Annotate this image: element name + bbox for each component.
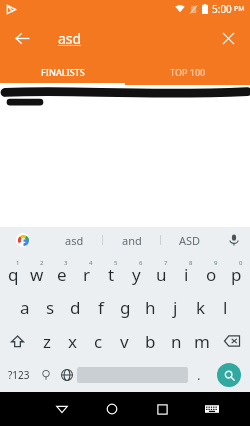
button[interactable]: ?123 — [2, 358, 35, 392]
button[interactable]: l — [213, 290, 238, 324]
button[interactable]: Change keyboard language — [56, 358, 77, 392]
staticText: l — [223, 296, 228, 319]
staticText: 5 — [114, 259, 118, 267]
button[interactable]: asd — [58, 29, 82, 48]
staticText: and — [122, 233, 142, 248]
button[interactable]: j — [163, 290, 188, 324]
button[interactable]: 1 — [1, 256, 25, 290]
button[interactable]: 5 — [99, 256, 124, 290]
button[interactable]: a — [12, 290, 38, 324]
staticText: 8 — [189, 259, 193, 267]
staticText: h — [145, 296, 156, 319]
staticText: c — [94, 330, 103, 353]
button[interactable]: Switch keyboard — [187, 392, 237, 426]
staticText: 2 — [40, 259, 44, 267]
button[interactable]: 8 — [174, 256, 199, 290]
button[interactable]: Google — [0, 227, 46, 253]
staticText: 1 — [16, 259, 20, 267]
button[interactable]: FINALISTS — [0, 58, 125, 85]
staticText: s — [46, 296, 55, 319]
button[interactable]: c — [85, 324, 111, 358]
button[interactable]: Back — [8, 24, 36, 52]
button[interactable]: v — [111, 324, 137, 358]
button[interactable]: h — [138, 290, 163, 324]
staticText: 7 — [164, 259, 168, 267]
button[interactable]: s — [38, 290, 63, 324]
button[interactable]: Backspace — [215, 324, 249, 358]
button[interactable]: x — [59, 324, 85, 358]
button[interactable]: TOP 100 — [125, 58, 250, 85]
staticText: 4 — [89, 259, 93, 267]
button[interactable]: 3 — [49, 256, 74, 290]
staticText: 3 — [64, 259, 68, 267]
button[interactable]: 9 — [199, 256, 224, 290]
button[interactable]: 4 — [74, 256, 99, 290]
button[interactable]: . — [188, 358, 209, 392]
staticText: v — [120, 330, 129, 353]
staticText: j — [173, 296, 178, 319]
staticText: p — [231, 263, 242, 286]
button[interactable]: m — [189, 324, 215, 358]
staticText: PM — [234, 4, 245, 14]
staticText: FINALISTS — [41, 66, 85, 78]
button[interactable]: Home — [87, 392, 137, 426]
button[interactable]: 6 — [124, 256, 149, 290]
button[interactable]: n — [163, 324, 189, 358]
staticText: a — [20, 296, 30, 319]
staticText: e — [57, 263, 67, 286]
staticText: . — [197, 366, 201, 384]
staticText: r — [83, 263, 91, 286]
button[interactable]: Recent apps — [137, 392, 187, 426]
button[interactable]: Emoji — [35, 358, 56, 392]
button[interactable]: g — [113, 290, 138, 324]
button[interactable]: z — [34, 324, 59, 358]
button[interactable]: 7 — [149, 256, 174, 290]
button[interactable]: Voice input — [218, 227, 250, 253]
staticText: TOP 100 — [170, 66, 206, 78]
button[interactable]: 2 — [25, 256, 49, 290]
staticText: q — [8, 263, 19, 286]
button[interactable]: k — [188, 290, 213, 324]
staticText: d — [70, 296, 81, 319]
button[interactable]: b — [137, 324, 163, 358]
staticText: 6 — [139, 259, 143, 267]
button[interactable]: ASD — [161, 227, 218, 253]
button[interactable]: 0 — [224, 256, 249, 290]
staticText: ?123 — [8, 368, 30, 382]
button[interactable]: Shift — [1, 324, 34, 358]
staticText: z — [43, 330, 51, 353]
button[interactable]: asd — [46, 227, 102, 253]
staticText: t — [108, 263, 115, 286]
staticText: 5:00 — [212, 2, 232, 16]
button[interactable]: f — [88, 290, 113, 324]
staticText: x — [68, 330, 77, 353]
button[interactable]: Clear search — [214, 24, 242, 52]
staticText: b — [145, 330, 156, 353]
staticText: n — [171, 330, 182, 353]
staticText: 9 — [214, 259, 218, 267]
staticText: 0 — [239, 259, 243, 267]
button[interactable]: d — [63, 290, 88, 324]
button[interactable]: and — [103, 227, 160, 253]
staticText: ASD — [179, 233, 201, 248]
staticText: f — [98, 296, 104, 319]
staticText: w — [30, 263, 44, 286]
staticText: asd — [58, 29, 82, 48]
staticText: g — [120, 296, 131, 319]
staticText: o — [206, 263, 217, 286]
button[interactable]: Back — [37, 392, 87, 426]
staticText: k — [196, 296, 206, 319]
staticText: i — [184, 263, 189, 286]
staticText: u — [156, 263, 167, 286]
button[interactable]: Search — [209, 358, 248, 392]
staticText: asd — [65, 233, 84, 248]
staticText: m — [194, 330, 210, 353]
staticText: y — [132, 263, 141, 286]
